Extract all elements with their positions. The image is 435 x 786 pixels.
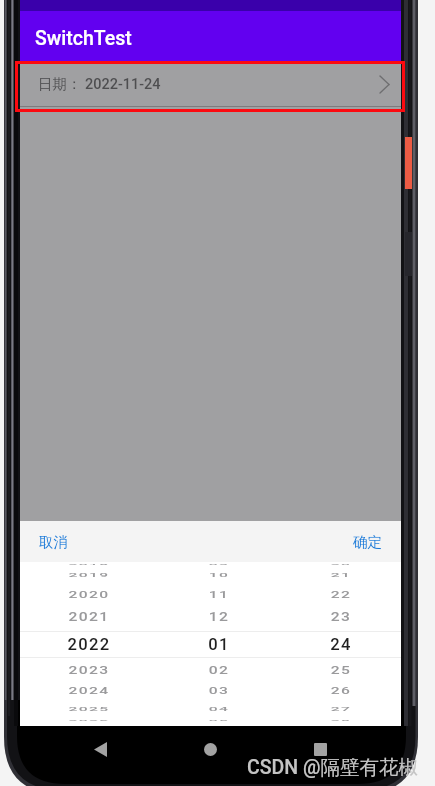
staticText: 24 xyxy=(281,635,401,654)
staticText: 2025 xyxy=(29,706,149,712)
staticText: 01 xyxy=(159,635,279,654)
staticText: 09 xyxy=(159,563,279,565)
staticText: 03 xyxy=(159,686,279,696)
staticText: 取消 xyxy=(39,533,68,551)
staticText: 27 xyxy=(281,706,401,712)
staticText: 21 xyxy=(281,572,401,578)
staticText: 2019 xyxy=(29,572,149,578)
staticText: 2022 xyxy=(29,635,149,654)
button[interactable]: Home xyxy=(193,732,227,766)
button[interactable]: 日期： 2022-11-24 xyxy=(20,61,401,107)
staticText: 2018 xyxy=(29,563,149,565)
staticText: 日期： 2022-11-24 xyxy=(38,75,161,93)
staticText: 25 xyxy=(281,664,401,676)
staticText: 04 xyxy=(159,706,279,712)
staticText: 28 xyxy=(281,719,401,721)
staticText: 22 xyxy=(281,590,401,600)
other: Open date picker xyxy=(380,76,389,93)
staticText: SwitchTest xyxy=(35,27,132,50)
staticText: 26 xyxy=(281,686,401,696)
staticText: 20 xyxy=(281,563,401,565)
button[interactable]: 确定 xyxy=(334,524,401,560)
staticText: CSDN @隔壁有花椒 xyxy=(247,755,418,780)
staticText: 2021 xyxy=(29,610,149,624)
button[interactable]: Recent apps xyxy=(303,732,337,766)
button[interactable]: 取消 xyxy=(20,524,87,560)
staticText: 23 xyxy=(281,610,401,624)
button[interactable]: Back xyxy=(83,732,117,766)
staticText: 02 xyxy=(159,664,279,676)
staticText: 2026 xyxy=(29,719,149,721)
staticText: 2023 xyxy=(29,664,149,676)
staticText: 确定 xyxy=(353,533,382,551)
staticText: 05 xyxy=(159,719,279,721)
staticText: 10 xyxy=(159,572,279,578)
staticText: 2020 xyxy=(29,590,149,600)
staticText: 11 xyxy=(159,590,279,600)
staticText: 12 xyxy=(159,610,279,624)
staticText: 2024 xyxy=(29,686,149,696)
